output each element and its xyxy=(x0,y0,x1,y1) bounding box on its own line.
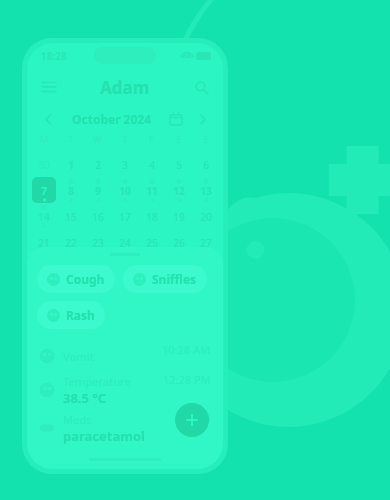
staticText: 2 xyxy=(95,158,101,172)
staticText: 12 xyxy=(173,184,185,198)
button[interactable]: 20 xyxy=(193,203,218,229)
staticText: 30 xyxy=(92,262,104,276)
button[interactable]: Search xyxy=(187,73,215,101)
button[interactable]: Cough xyxy=(37,265,115,293)
button[interactable]: 12 xyxy=(166,177,191,203)
button[interactable]: Rash xyxy=(37,301,105,329)
staticText: Adam xyxy=(100,76,150,99)
button[interactable]: Temperature xyxy=(27,371,223,409)
button[interactable]: 24 xyxy=(112,229,137,255)
button[interactable]: 8 xyxy=(58,177,83,203)
staticText: 20 xyxy=(200,210,212,224)
staticText: 14 xyxy=(38,210,50,224)
staticText: 22 xyxy=(65,236,77,250)
button[interactable]: Meds xyxy=(27,409,223,447)
staticText: 29 xyxy=(65,262,77,276)
button[interactable]: Menu xyxy=(35,73,63,101)
staticText: 12:3 xyxy=(189,410,211,425)
staticText: 5 xyxy=(176,158,182,172)
staticText: 24 xyxy=(119,236,131,250)
staticText: 18:28 xyxy=(41,49,67,63)
button[interactable]: 27 xyxy=(193,229,218,255)
staticText: 13 xyxy=(200,184,212,198)
button[interactable]: 26 xyxy=(166,229,191,255)
button[interactable]: Add entry xyxy=(175,403,209,437)
staticText: 26 xyxy=(173,236,185,250)
button[interactable]: 11 xyxy=(139,177,164,203)
staticText: Sniffles xyxy=(152,271,197,287)
staticText: 28 xyxy=(38,262,50,276)
staticText: Temperature xyxy=(63,374,131,389)
button[interactable]: 21 xyxy=(32,229,56,255)
staticText: 27 xyxy=(200,236,212,250)
staticText: 19 xyxy=(173,210,185,224)
staticText: Rash xyxy=(66,307,95,323)
staticText: 1 xyxy=(149,262,155,276)
staticText: 31 xyxy=(119,262,131,276)
staticText: 4 xyxy=(149,158,155,172)
staticText: Vomit xyxy=(63,349,94,364)
staticText: 17 xyxy=(119,210,131,224)
button[interactable]: 14 xyxy=(32,203,56,229)
staticText: 8 xyxy=(68,184,74,198)
staticText: Meds xyxy=(63,412,92,427)
staticText: 25 xyxy=(146,236,158,250)
staticText: 3 xyxy=(203,262,209,276)
button[interactable]: 7 xyxy=(32,177,56,203)
staticText: 16 xyxy=(92,210,104,224)
staticText: 10 xyxy=(119,184,131,198)
staticText: 18 xyxy=(146,210,158,224)
button[interactable]: Pick date xyxy=(165,108,187,130)
button[interactable]: 3 xyxy=(193,255,218,281)
button[interactable]: 22 xyxy=(58,229,83,255)
button[interactable]: 2 xyxy=(166,255,191,281)
staticText: 21 xyxy=(38,236,50,250)
button[interactable]: 18 xyxy=(139,203,164,229)
staticText: 38.5 °C xyxy=(63,389,107,407)
staticText: 9 xyxy=(95,184,101,198)
staticText: 7 xyxy=(41,184,47,198)
staticText: paracetamol xyxy=(63,427,145,445)
staticText: 3 xyxy=(122,158,128,172)
staticText: 15 xyxy=(65,210,77,224)
staticText: 23 xyxy=(92,236,104,250)
staticText: 2 xyxy=(176,262,182,276)
button[interactable]: 25 xyxy=(139,229,164,255)
button[interactable]: 23 xyxy=(85,229,110,255)
staticText: 6 xyxy=(203,158,209,172)
staticText: Cough xyxy=(66,271,105,287)
staticText: October 2024 xyxy=(72,111,152,127)
button[interactable]: 30 xyxy=(85,255,110,281)
button[interactable]: 10 xyxy=(112,177,137,203)
button[interactable]: 13 xyxy=(193,177,218,203)
button[interactable]: 31 xyxy=(112,255,137,281)
button[interactable]: Sniffles xyxy=(123,265,207,293)
button[interactable]: 29 xyxy=(58,255,83,281)
button[interactable]: 28 xyxy=(32,255,56,281)
button[interactable]: 1 xyxy=(139,255,164,281)
staticText: 11 xyxy=(146,184,158,198)
staticText: 10:28 AM xyxy=(162,342,211,357)
